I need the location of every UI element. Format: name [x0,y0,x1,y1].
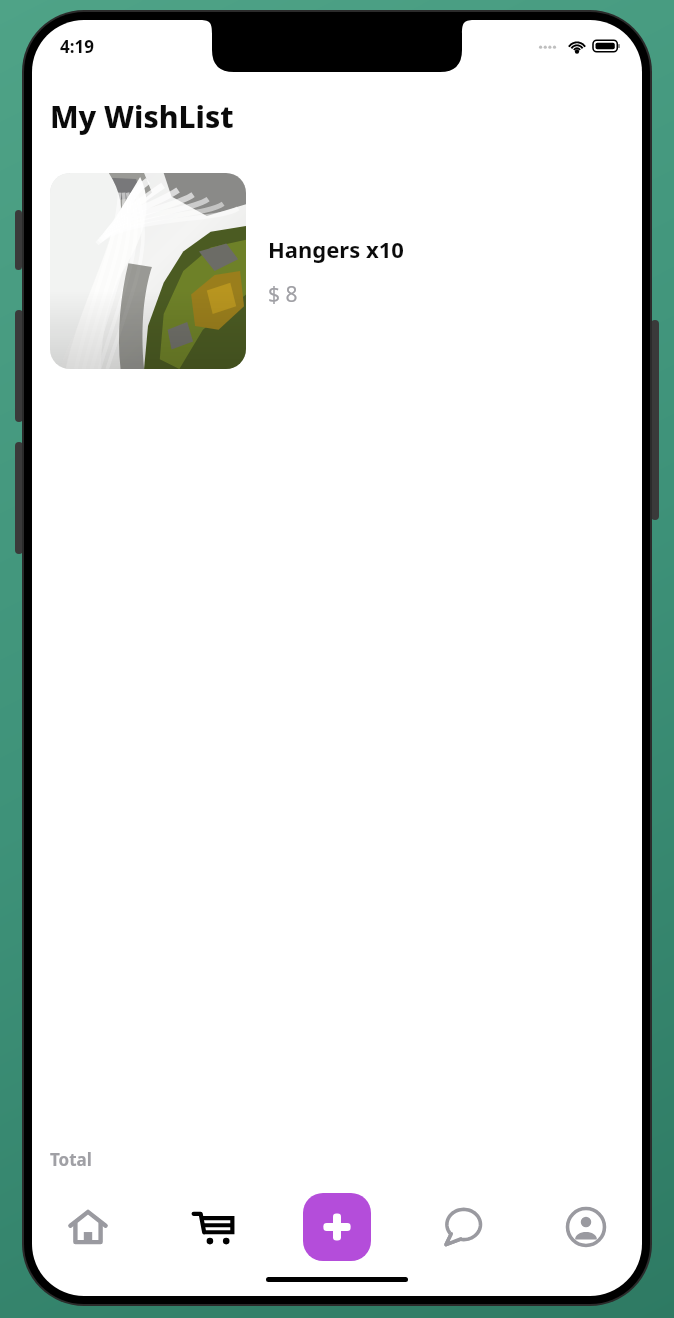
staticText: Hangers x10 [268,234,404,264]
staticText: Total [50,1148,92,1171]
staticText: My WishList [50,96,234,137]
button[interactable]: Cart [177,1191,249,1263]
button[interactable]: Messages [426,1191,498,1263]
button[interactable]: Hangers x10 [32,173,642,369]
button[interactable]: Profile [550,1191,622,1263]
staticText: $ 8 [268,280,298,309]
button[interactable]: Add item [301,1191,373,1263]
button[interactable]: Home [52,1191,124,1263]
staticText: 4:19 [60,35,94,58]
